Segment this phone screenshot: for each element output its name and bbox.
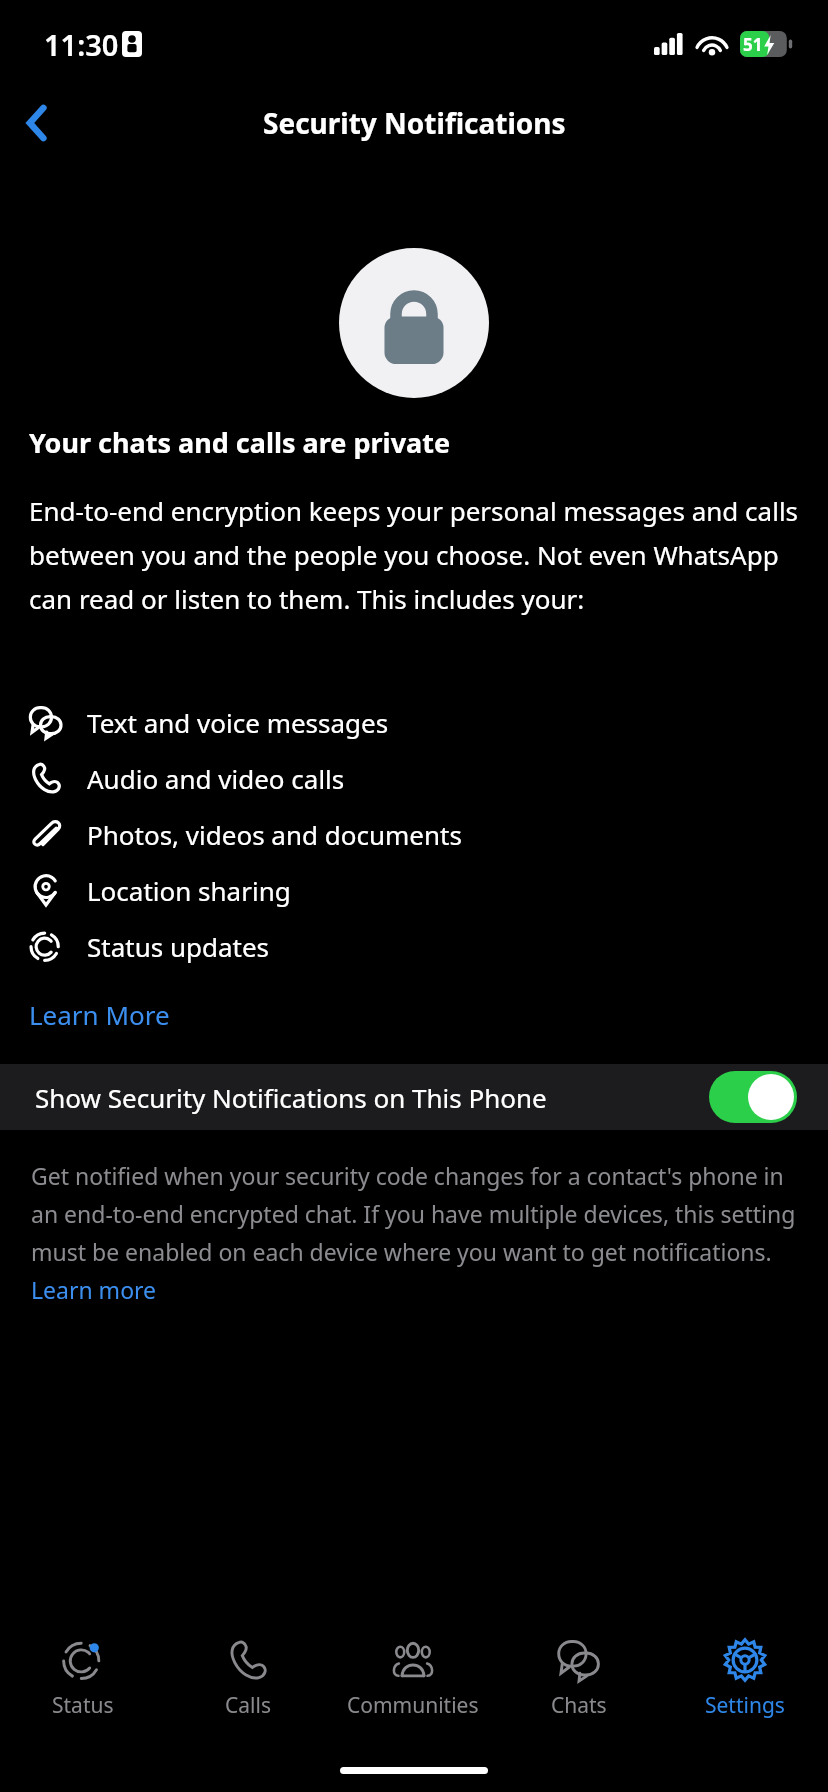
staticText: Text and voice messages [87,705,389,740]
button[interactable]: Communities [330,1624,496,1734]
staticText: Audio and video calls [87,761,345,796]
staticText: 11:30 [44,25,119,64]
button[interactable]: Chats [496,1624,662,1734]
button[interactable]: Learn More [29,993,170,1036]
button[interactable]: Show Security Notifications on This Phon… [0,1064,828,1130]
staticText: Location sharing [87,873,291,908]
staticText: 51 [743,33,763,56]
button[interactable]: Back [8,94,66,152]
button[interactable]: Status [0,1624,165,1734]
staticText: Get notified when your security code cha… [31,1160,797,1306]
staticText: Your chats and calls are private [29,424,451,461]
staticText: Calls [225,1691,271,1720]
staticText: Status [52,1691,114,1720]
staticText: Photos, videos and documents [87,817,462,852]
button[interactable]: Settings [662,1624,828,1734]
button[interactable]: Calls [165,1624,330,1734]
staticText: Chats [551,1691,607,1720]
staticText: Learn More [29,997,170,1032]
staticText: Status updates [87,929,270,964]
staticText: Settings [705,1691,785,1720]
staticText: Communities [347,1691,479,1720]
staticText: Security Notifications [263,104,566,142]
staticText: Show Security Notifications on This Phon… [35,1080,699,1115]
staticText: End-to-end encryption keeps your persona… [29,493,799,616]
